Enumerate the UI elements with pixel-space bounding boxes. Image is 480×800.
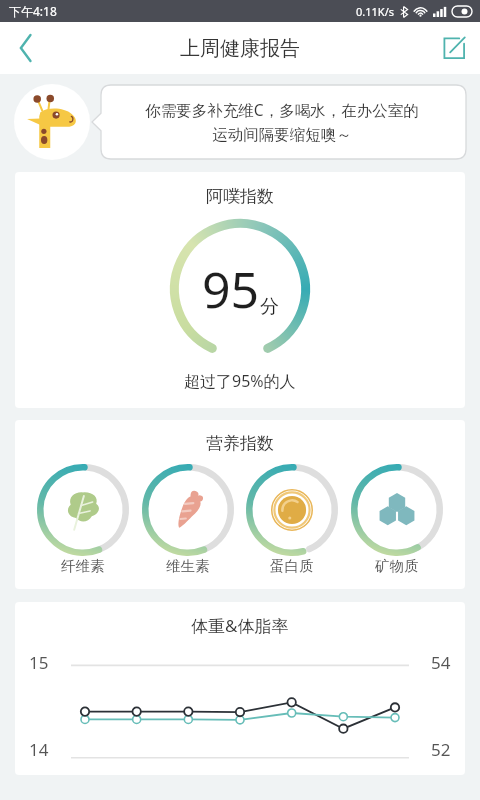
staticText: 阿噗指数 xyxy=(206,186,274,207)
staticText: 52 xyxy=(431,738,451,761)
button[interactable]: 体重&体脂率 xyxy=(15,602,465,775)
staticText: 超过了95%的人 xyxy=(184,370,296,392)
staticText: 上周健康报告 xyxy=(180,36,300,61)
staticText: 纤维素 xyxy=(61,557,105,575)
staticText: 95 xyxy=(202,255,260,323)
staticText: 54 xyxy=(431,651,451,674)
staticText: 维生素 xyxy=(166,557,210,575)
staticText: 运动间隔要缩短噢～ xyxy=(212,125,352,145)
staticText: 矿物质 xyxy=(375,557,419,575)
staticText: 14 xyxy=(29,738,49,761)
button[interactable]: Back xyxy=(0,22,52,74)
staticText: 下午4:18 xyxy=(9,3,57,19)
staticText: 你需要多补充维C，多喝水，在办公室的 xyxy=(145,99,419,120)
button[interactable]: Edit xyxy=(428,22,480,74)
staticText: 分 xyxy=(260,295,279,319)
staticText: 15 xyxy=(29,651,49,674)
staticText: 0.11K/s xyxy=(356,4,394,19)
staticText: 营养指数 xyxy=(206,433,274,454)
staticText: 体重&体脂率 xyxy=(191,614,289,637)
button[interactable]: 营养指数 xyxy=(15,420,465,589)
staticText: 蛋白质 xyxy=(270,557,314,575)
button[interactable]: 阿噗指数 xyxy=(15,172,465,408)
